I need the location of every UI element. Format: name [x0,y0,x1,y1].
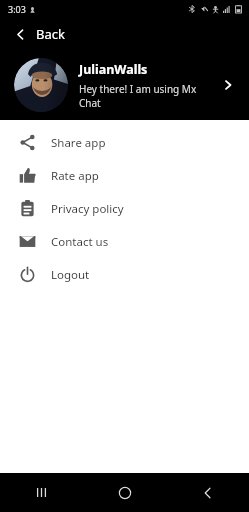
staticText: Share app [51,135,106,151]
button[interactable]: Rate app [0,159,249,192]
staticText: Hey there! I am using Mx Chat [79,82,215,110]
staticText: JulianWalls [79,61,148,78]
staticText: Logout [51,267,90,283]
staticText: Back [36,25,65,43]
button[interactable]: JulianWalls [0,50,249,120]
button[interactable]: Recent apps [0,473,83,512]
button[interactable]: Home [83,473,166,512]
staticText: 3:03 [8,3,26,15]
button[interactable]: Back [166,473,249,512]
staticText: Privacy policy [51,201,124,217]
staticText: Rate app [51,168,99,184]
button[interactable]: Contact us [0,225,249,258]
button[interactable]: Share app [0,126,249,159]
staticText: Contact us [51,234,109,250]
button[interactable]: Privacy policy [0,192,249,225]
button[interactable]: Logout [0,258,249,291]
other: Open profile [221,78,235,92]
other: Back [14,28,27,41]
button[interactable]: Back [0,20,79,48]
